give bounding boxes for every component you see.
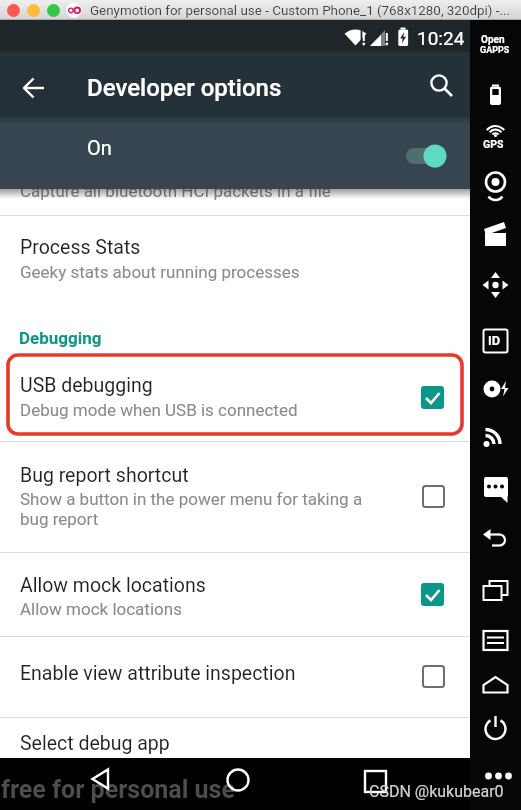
staticText: Geeky stats about running processes (20, 262, 300, 282)
button[interactable] (424, 66, 464, 106)
staticText: free for personal use (1, 775, 235, 804)
button[interactable] (0, 553, 470, 636)
staticText: GPS (483, 138, 504, 150)
button[interactable] (422, 485, 445, 508)
button[interactable] (422, 665, 445, 688)
button[interactable] (474, 264, 517, 306)
button[interactable] (474, 466, 517, 508)
staticText: bug report (20, 509, 99, 529)
staticText: USB debugging (20, 374, 153, 397)
button[interactable] (27, 4, 40, 17)
staticText: GAPPS (480, 45, 510, 56)
button[interactable] (216, 762, 260, 806)
button[interactable] (474, 161, 517, 203)
button[interactable] (0, 216, 470, 310)
staticText: Enable view attribute inspection (20, 662, 296, 685)
button[interactable] (12, 66, 56, 110)
button[interactable] (0, 637, 470, 717)
button[interactable] (47, 4, 60, 17)
button[interactable] (7, 4, 20, 17)
button[interactable] (474, 708, 517, 750)
button[interactable] (421, 583, 444, 606)
button[interactable] (398, 138, 450, 174)
staticText: Process Stats (20, 236, 141, 259)
button[interactable] (0, 442, 470, 552)
button[interactable] (474, 514, 517, 556)
button[interactable] (421, 386, 444, 409)
staticText: On (87, 136, 112, 159)
staticText: Debugging (19, 328, 102, 348)
staticText: ID (488, 333, 501, 348)
staticText: CSDN @kukubear0 (369, 782, 504, 801)
button[interactable] (474, 213, 517, 255)
staticText: Developer options (87, 74, 282, 102)
staticText: 10:24 (417, 27, 465, 49)
button[interactable] (353, 762, 397, 806)
staticText: Open (481, 34, 505, 46)
button[interactable] (474, 320, 517, 362)
button[interactable] (474, 368, 517, 410)
staticText: Bug report shortcut (20, 464, 189, 487)
button[interactable] (0, 355, 470, 441)
button[interactable] (474, 664, 517, 706)
staticText: Allow mock locations (20, 574, 206, 597)
button[interactable] (474, 116, 517, 158)
button[interactable] (474, 72, 517, 114)
button[interactable] (474, 567, 517, 609)
staticText: Allow mock locations (20, 599, 182, 619)
staticText: Debug mode when USB is connected (20, 400, 298, 420)
button[interactable] (85, 762, 129, 806)
staticText: Capture all bluetooth HCI packets in a f… (20, 181, 331, 201)
button[interactable] (474, 619, 517, 661)
staticText: Genymotion for personal use - Custom Pho… (90, 3, 511, 19)
button[interactable] (474, 423, 517, 465)
button[interactable] (0, 718, 470, 758)
button[interactable] (0, 117, 470, 189)
staticText: Show a button in the power menu for taki… (20, 489, 363, 509)
staticText: Select debug app (20, 732, 170, 755)
